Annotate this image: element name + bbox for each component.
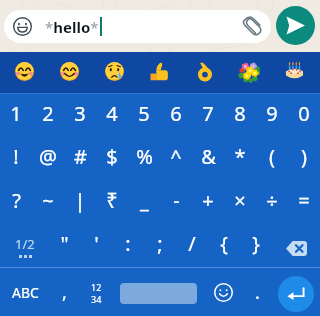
button[interactable]: -: [160, 179, 192, 222]
staticText: ₹: [106, 187, 118, 214]
staticText: ^: [170, 143, 182, 170]
button[interactable]: ": [48, 222, 80, 265]
staticText: 3: [74, 100, 86, 127]
button[interactable]: ;: [144, 222, 176, 265]
staticText: 1: [10, 100, 22, 127]
button[interactable]: Page 1 of 2: [1, 225, 49, 268]
button[interactable]: 5: [128, 92, 160, 135]
staticText: |: [74, 187, 86, 214]
button[interactable]: }: [240, 222, 272, 265]
staticText: ~: [42, 187, 54, 214]
button[interactable]: 8: [224, 92, 256, 135]
button[interactable]: 6: [160, 92, 192, 135]
button[interactable]: @: [32, 135, 64, 178]
button[interactable]: ): [288, 135, 320, 178]
staticText: 12: [91, 281, 102, 293]
button[interactable]: ^: [160, 135, 192, 178]
staticText: +: [202, 187, 214, 214]
button[interactable]: Attach: [243, 17, 263, 37]
button[interactable]: Enter: [278, 276, 314, 312]
staticText: =: [298, 187, 310, 214]
staticText: $: [106, 143, 118, 170]
button[interactable]: !: [0, 135, 32, 178]
staticText: %: [136, 143, 153, 170]
staticText: ×: [234, 187, 246, 214]
staticText: _: [140, 187, 149, 214]
button[interactable]: Emoji 7: [273, 50, 315, 92]
button[interactable]: .: [243, 268, 271, 316]
button[interactable]: ₹: [96, 179, 128, 222]
button[interactable]: 9: [256, 92, 288, 135]
staticText: .: [255, 280, 260, 305]
button[interactable]: 0: [288, 92, 320, 135]
button[interactable]: *: [224, 135, 256, 178]
staticText: -: [173, 187, 180, 214]
staticText: /: [188, 230, 196, 257]
staticText: 4: [106, 100, 118, 127]
staticText: :: [125, 230, 131, 257]
button[interactable]: |: [64, 179, 96, 222]
staticText: 2: [42, 100, 54, 127]
button[interactable]: 4: [96, 92, 128, 135]
button[interactable]: %: [128, 135, 160, 178]
staticText: {: [220, 230, 228, 257]
staticText: ÷: [266, 187, 278, 214]
staticText: ;: [157, 230, 163, 257]
button[interactable]: Emoji 5: [183, 50, 225, 92]
staticText: &: [201, 143, 216, 170]
staticText: !: [13, 143, 19, 170]
button[interactable]: 7: [192, 92, 224, 135]
button[interactable]: Numbers: [78, 268, 114, 316]
button[interactable]: :: [112, 222, 144, 265]
button[interactable]: +: [192, 179, 224, 222]
staticText: 5: [138, 100, 150, 127]
button[interactable]: ?: [0, 179, 32, 222]
staticText: #: [74, 143, 87, 170]
button[interactable]: =: [288, 179, 320, 222]
button[interactable]: Emoji 2: [48, 50, 90, 92]
button[interactable]: Space: [120, 283, 197, 304]
button[interactable]: Emoji 6: [228, 50, 270, 92]
button[interactable]: Emoji: [13, 17, 32, 36]
button[interactable]: Emoji keyboard: [203, 268, 243, 316]
staticText: @: [39, 143, 57, 170]
button[interactable]: $: [96, 135, 128, 178]
button[interactable]: Emoji 4: [138, 50, 180, 92]
button[interactable]: #: [64, 135, 96, 178]
button[interactable]: 1: [0, 92, 32, 135]
staticText: 9: [266, 100, 278, 127]
staticText: 8: [234, 100, 246, 127]
staticText: 7: [202, 100, 214, 127]
button[interactable]: ~: [32, 179, 64, 222]
button[interactable]: ,: [50, 268, 78, 316]
staticText: *: [234, 143, 246, 170]
staticText: 6: [170, 100, 182, 127]
staticText: ,: [62, 280, 67, 305]
button[interactable]: {: [208, 222, 240, 265]
button[interactable]: (: [256, 135, 288, 178]
staticText: 1/2: [15, 235, 35, 253]
button[interactable]: 2: [32, 92, 64, 135]
button[interactable]: Send: [276, 6, 315, 45]
button[interactable]: _: [128, 179, 160, 222]
button[interactable]: ×: [224, 179, 256, 222]
button[interactable]: 3: [64, 92, 96, 135]
button[interactable]: Backspace: [272, 227, 320, 270]
button[interactable]: ': [80, 222, 112, 265]
button[interactable]: Emoji 1: [3, 50, 45, 92]
button[interactable]: Emoji: [4, 10, 271, 43]
staticText: *hello*: [45, 17, 99, 37]
button[interactable]: /: [176, 222, 208, 265]
staticText: ': [94, 230, 99, 257]
staticText: ?: [12, 187, 21, 214]
staticText: ): [301, 143, 307, 170]
staticText: 0: [298, 100, 310, 127]
button[interactable]: Emoji 3: [93, 50, 135, 92]
button[interactable]: ÷: [256, 179, 288, 222]
staticText: (: [269, 143, 275, 170]
staticText: }: [252, 230, 260, 257]
staticText: 34: [91, 293, 102, 305]
button[interactable]: Letters: [0, 268, 50, 316]
button[interactable]: &: [192, 135, 224, 178]
staticText: ABC: [12, 283, 39, 302]
